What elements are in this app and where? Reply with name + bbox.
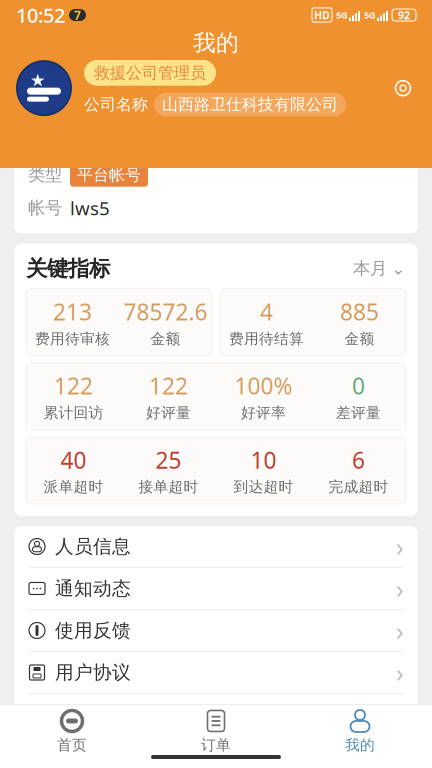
staticText: 救援公司管理员 [94,63,206,83]
staticText: 费用待结算 [229,330,304,348]
staticText: 92 [398,8,410,22]
staticText: 122 [149,371,188,401]
button[interactable]: 隐私政策 [14,694,418,735]
staticText: 我的 [193,29,239,57]
staticText: 金额 [344,330,374,348]
staticText: 关键指标 [26,255,110,282]
staticText: 122 [54,371,93,401]
staticText: 派单超时 [43,478,103,496]
staticText: 金额 [150,330,180,348]
staticText: 公司名称 [84,95,148,114]
staticText: 隐私政策 [55,703,131,726]
staticText: 累计回访 [43,404,103,422]
staticText: 4 [260,297,273,327]
staticText: 通知动态 [55,577,131,600]
staticText: › [396,572,404,605]
staticText: 25 [155,445,181,475]
staticText: 山西路卫仕科技有限公司 [162,95,338,114]
staticText: › [396,698,404,731]
staticText: 首页 [57,736,87,754]
staticText: 本月 [353,258,387,279]
staticText: 类型 [28,164,62,185]
staticText: › [396,656,404,689]
staticText: ★ [30,70,46,90]
button[interactable]: 通知动态 [14,568,418,609]
staticText: 到达超时 [233,478,293,496]
staticText: 使用反馈 [55,619,131,642]
staticText: 差评量 [336,404,381,422]
staticText: 213 [53,297,92,327]
staticText: 885 [340,297,379,327]
button[interactable]: 订单 [144,704,288,754]
staticText: 5G [364,9,376,21]
staticText: 好评率 [241,404,286,422]
staticText: 好评量 [146,404,191,422]
staticText: 订单 [201,736,231,754]
button[interactable]: 使用反馈 [14,610,418,651]
staticText: 40 [60,445,86,475]
staticText: 平台帐号 [77,165,141,185]
button[interactable]: 首页 [0,704,144,754]
staticText: 接单超时 [138,478,198,496]
staticText: 10 [250,445,276,475]
staticText: 78572.6 [123,297,207,327]
staticText: lws5 [70,196,110,220]
staticText: 7 [74,7,81,23]
button[interactable]: 用户协议 [14,652,418,693]
staticText: 10:52 [16,2,65,28]
staticText: 我的 [345,736,375,754]
staticText: 5G [336,9,348,21]
staticText: 人员信息 [55,535,131,558]
staticText: 费用待审核 [35,330,110,348]
button[interactable]: 设置 [390,75,416,101]
staticText: HD [314,8,330,22]
button[interactable]: 本月 [353,258,406,279]
staticText: 用户协议 [55,661,131,684]
staticText: 100% [234,371,292,401]
staticText: 完成超时 [328,478,388,496]
staticText: 退出 [55,745,93,768]
button[interactable]: 人员信息 [14,526,418,567]
button[interactable]: ▸ [14,736,418,768]
staticText: 6 [352,445,365,475]
staticText: 帐号 [28,197,62,219]
staticText: › [396,614,404,647]
staticText: › [396,530,404,563]
button[interactable]: 我的 [288,704,432,754]
staticText: ⌄ [391,259,406,278]
staticText: 0 [352,371,365,401]
